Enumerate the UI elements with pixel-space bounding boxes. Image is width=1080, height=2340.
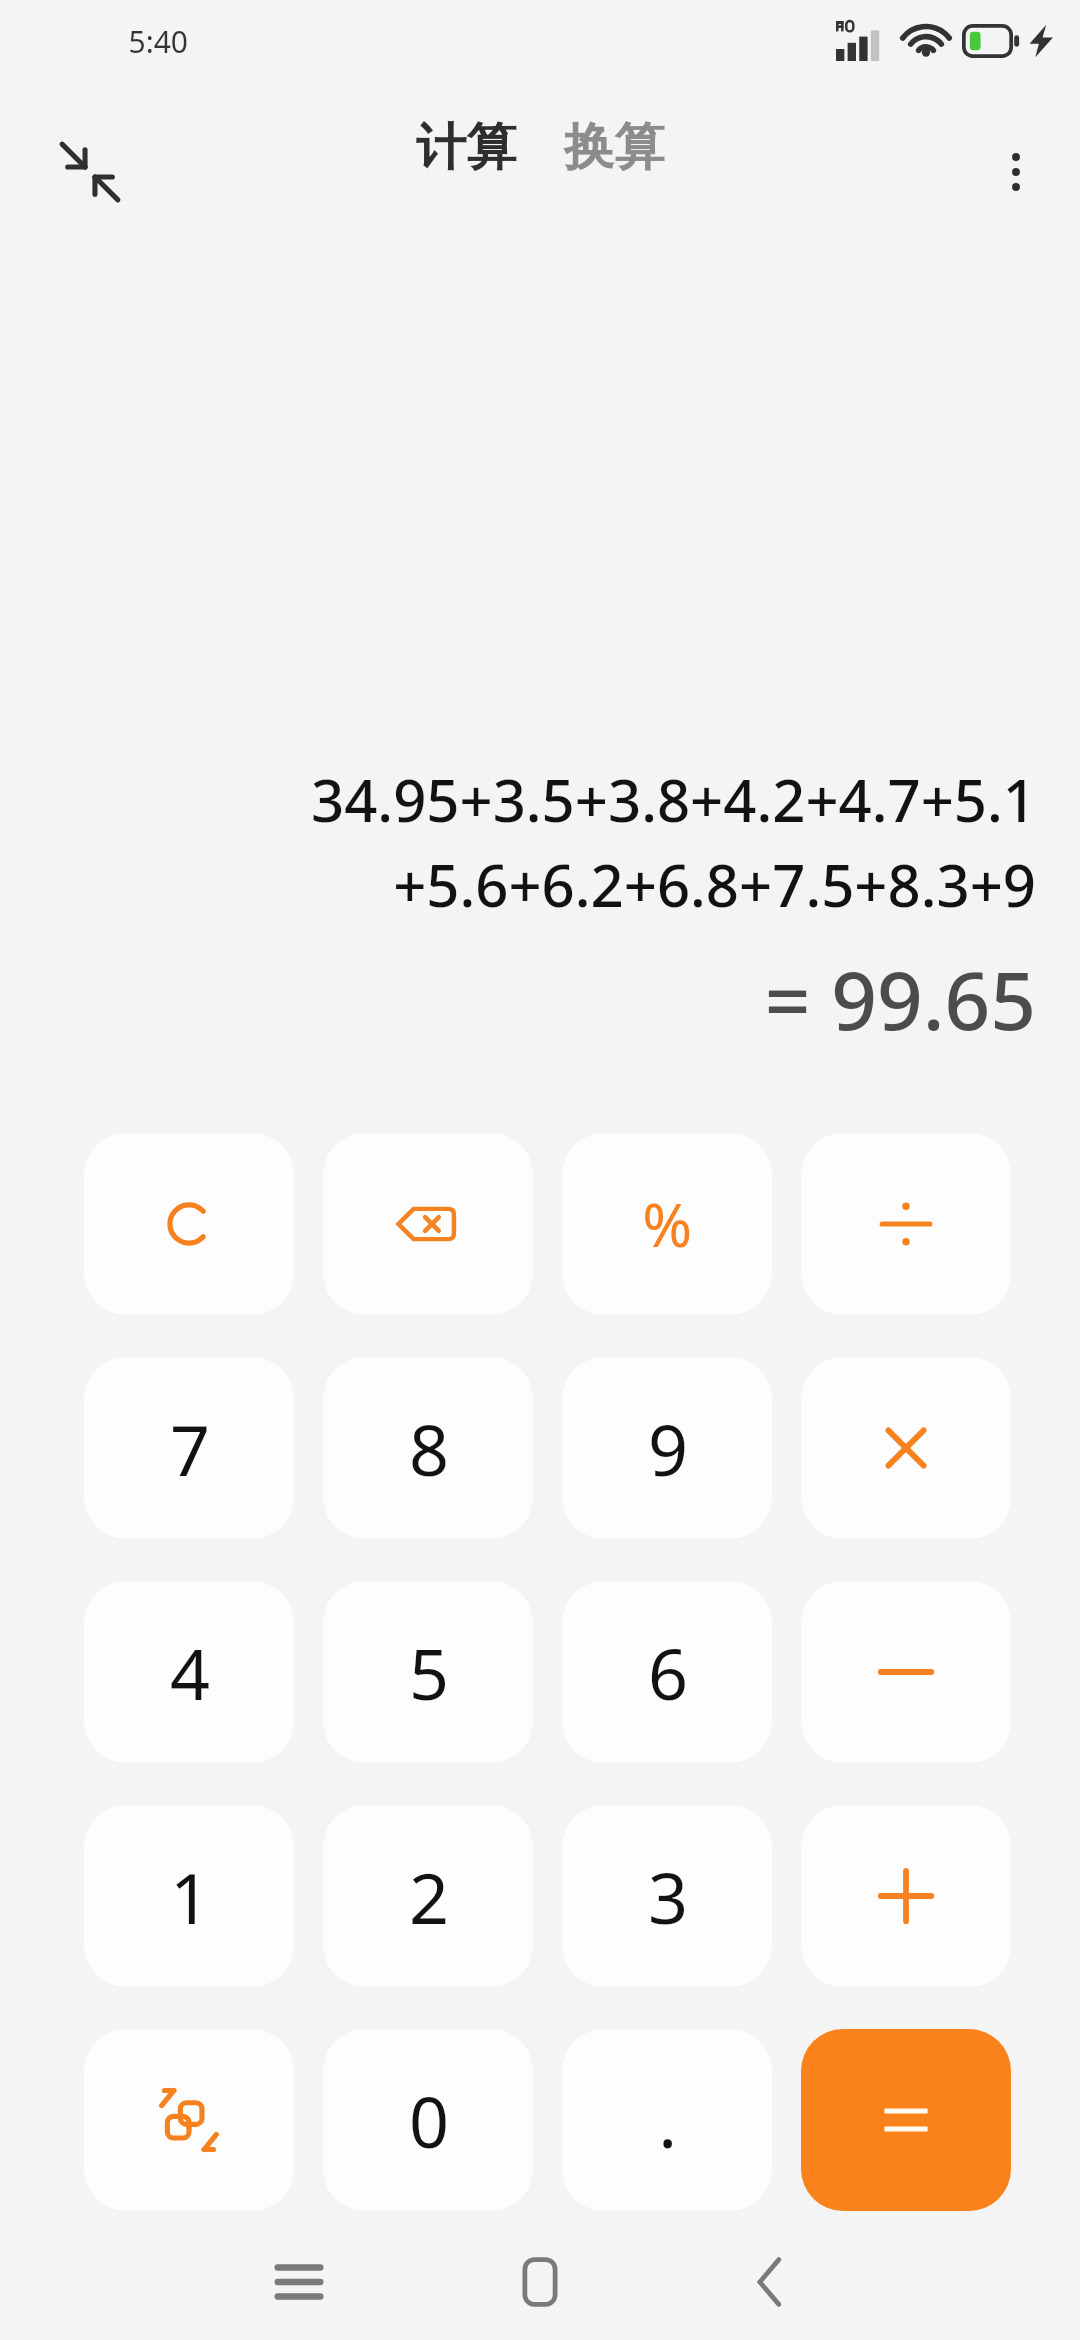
staticText: 1 (169, 1849, 210, 1944)
staticText: 2 (408, 1849, 449, 1944)
button[interactable]: Minus (801, 1581, 1011, 1763)
button[interactable]: Collapse (44, 126, 136, 218)
staticText: 34.95+3.5+3.8+4.2+4.7+5.1 (310, 760, 1036, 839)
button[interactable]: More options (970, 126, 1062, 218)
button[interactable]: 7 (84, 1357, 294, 1539)
staticText: 计算 (416, 116, 516, 179)
button[interactable]: 2 (323, 1805, 533, 1987)
staticText: 9 (647, 1401, 688, 1496)
staticText: % (642, 1183, 692, 1265)
button[interactable]: Recents (243, 2226, 355, 2338)
button[interactable]: Backspace (323, 1133, 533, 1315)
button[interactable]: Clear (84, 1133, 294, 1315)
staticText: 4 (169, 1625, 210, 1720)
staticText: 8 (408, 1401, 449, 1496)
staticText: 6 (647, 1625, 688, 1720)
button[interactable]: Unit conversion (84, 2029, 294, 2211)
staticText: 0 (408, 2073, 449, 2168)
staticText: 换算 (564, 116, 664, 179)
button[interactable]: Multiply (801, 1357, 1011, 1539)
button[interactable]: 6 (562, 1581, 772, 1763)
button[interactable]: 1 (84, 1805, 294, 1987)
button[interactable]: Home (484, 2226, 596, 2338)
button[interactable]: 计算 (408, 112, 524, 183)
button[interactable]: Equals (801, 2029, 1011, 2211)
button[interactable]: 8 (323, 1357, 533, 1539)
staticText: 3 (647, 1849, 688, 1944)
button[interactable]: 4 (84, 1581, 294, 1763)
button[interactable]: 5 (323, 1581, 533, 1763)
button[interactable]: Percent (562, 1133, 772, 1315)
staticText: = 99.65 (764, 944, 1036, 1053)
button[interactable]: . (562, 2029, 772, 2211)
button[interactable]: 3 (562, 1805, 772, 1987)
button[interactable]: 换算 (556, 112, 672, 183)
button[interactable]: Divide (801, 1133, 1011, 1315)
button[interactable]: 0 (323, 2029, 533, 2211)
staticText: 5:40 (128, 21, 188, 62)
staticText: 7 (169, 1401, 210, 1496)
staticText: +5.6+6.2+6.8+7.5+8.3+9 (393, 845, 1036, 924)
button[interactable]: Back (715, 2226, 827, 2338)
staticText: . (658, 2073, 677, 2168)
button[interactable]: Plus (801, 1805, 1011, 1987)
staticText: 5 (408, 1625, 449, 1720)
button[interactable]: 9 (562, 1357, 772, 1539)
